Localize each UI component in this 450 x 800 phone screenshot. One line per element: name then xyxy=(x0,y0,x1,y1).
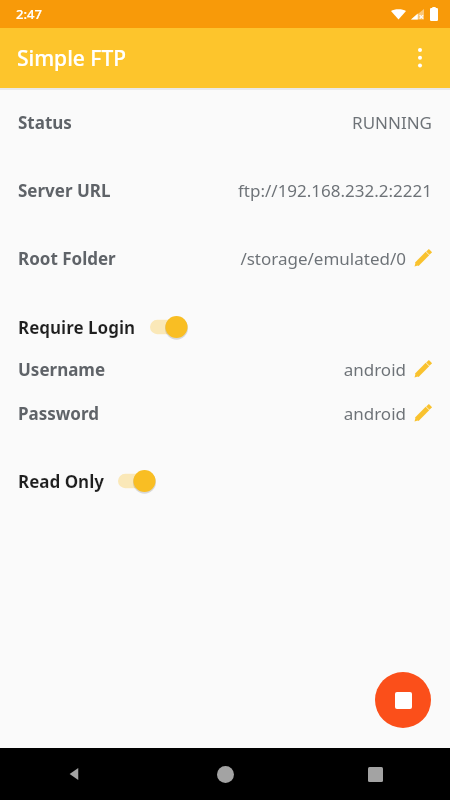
staticText: Read Only xyxy=(18,470,104,493)
staticText: RUNNING xyxy=(352,111,432,134)
staticText: Require Login xyxy=(18,316,136,339)
staticText: Password xyxy=(18,402,99,425)
staticText: Status xyxy=(18,111,72,134)
staticText: Root Folder xyxy=(18,247,116,270)
staticText: Server URL xyxy=(18,179,111,202)
button[interactable]: Read Only xyxy=(0,466,450,496)
button[interactable]: Home xyxy=(150,748,300,800)
staticText: android xyxy=(343,358,406,381)
staticText: ftp://192.168.232.2:2221 xyxy=(237,179,432,202)
button[interactable]: Server URL xyxy=(0,176,450,204)
button[interactable]: Stop server xyxy=(375,672,431,728)
staticText: 2:47 xyxy=(16,5,42,23)
button[interactable]: Recents xyxy=(300,748,450,800)
staticText: Simple FTP xyxy=(17,44,127,73)
button[interactable]: Require Login xyxy=(0,312,450,342)
button[interactable]: Status xyxy=(0,108,450,136)
button[interactable]: More options xyxy=(398,36,442,80)
button[interactable]: Password xyxy=(0,400,450,426)
staticText: android xyxy=(343,402,406,425)
staticText: Username xyxy=(18,358,106,381)
button[interactable]: Root Folder xyxy=(0,244,450,272)
button[interactable]: Back xyxy=(0,748,150,800)
other: Edit xyxy=(413,249,432,268)
other: Edit xyxy=(413,404,432,423)
button[interactable]: Username xyxy=(0,356,450,382)
staticText: /storage/emulated/0 xyxy=(240,247,406,270)
other: Edit xyxy=(413,360,432,379)
